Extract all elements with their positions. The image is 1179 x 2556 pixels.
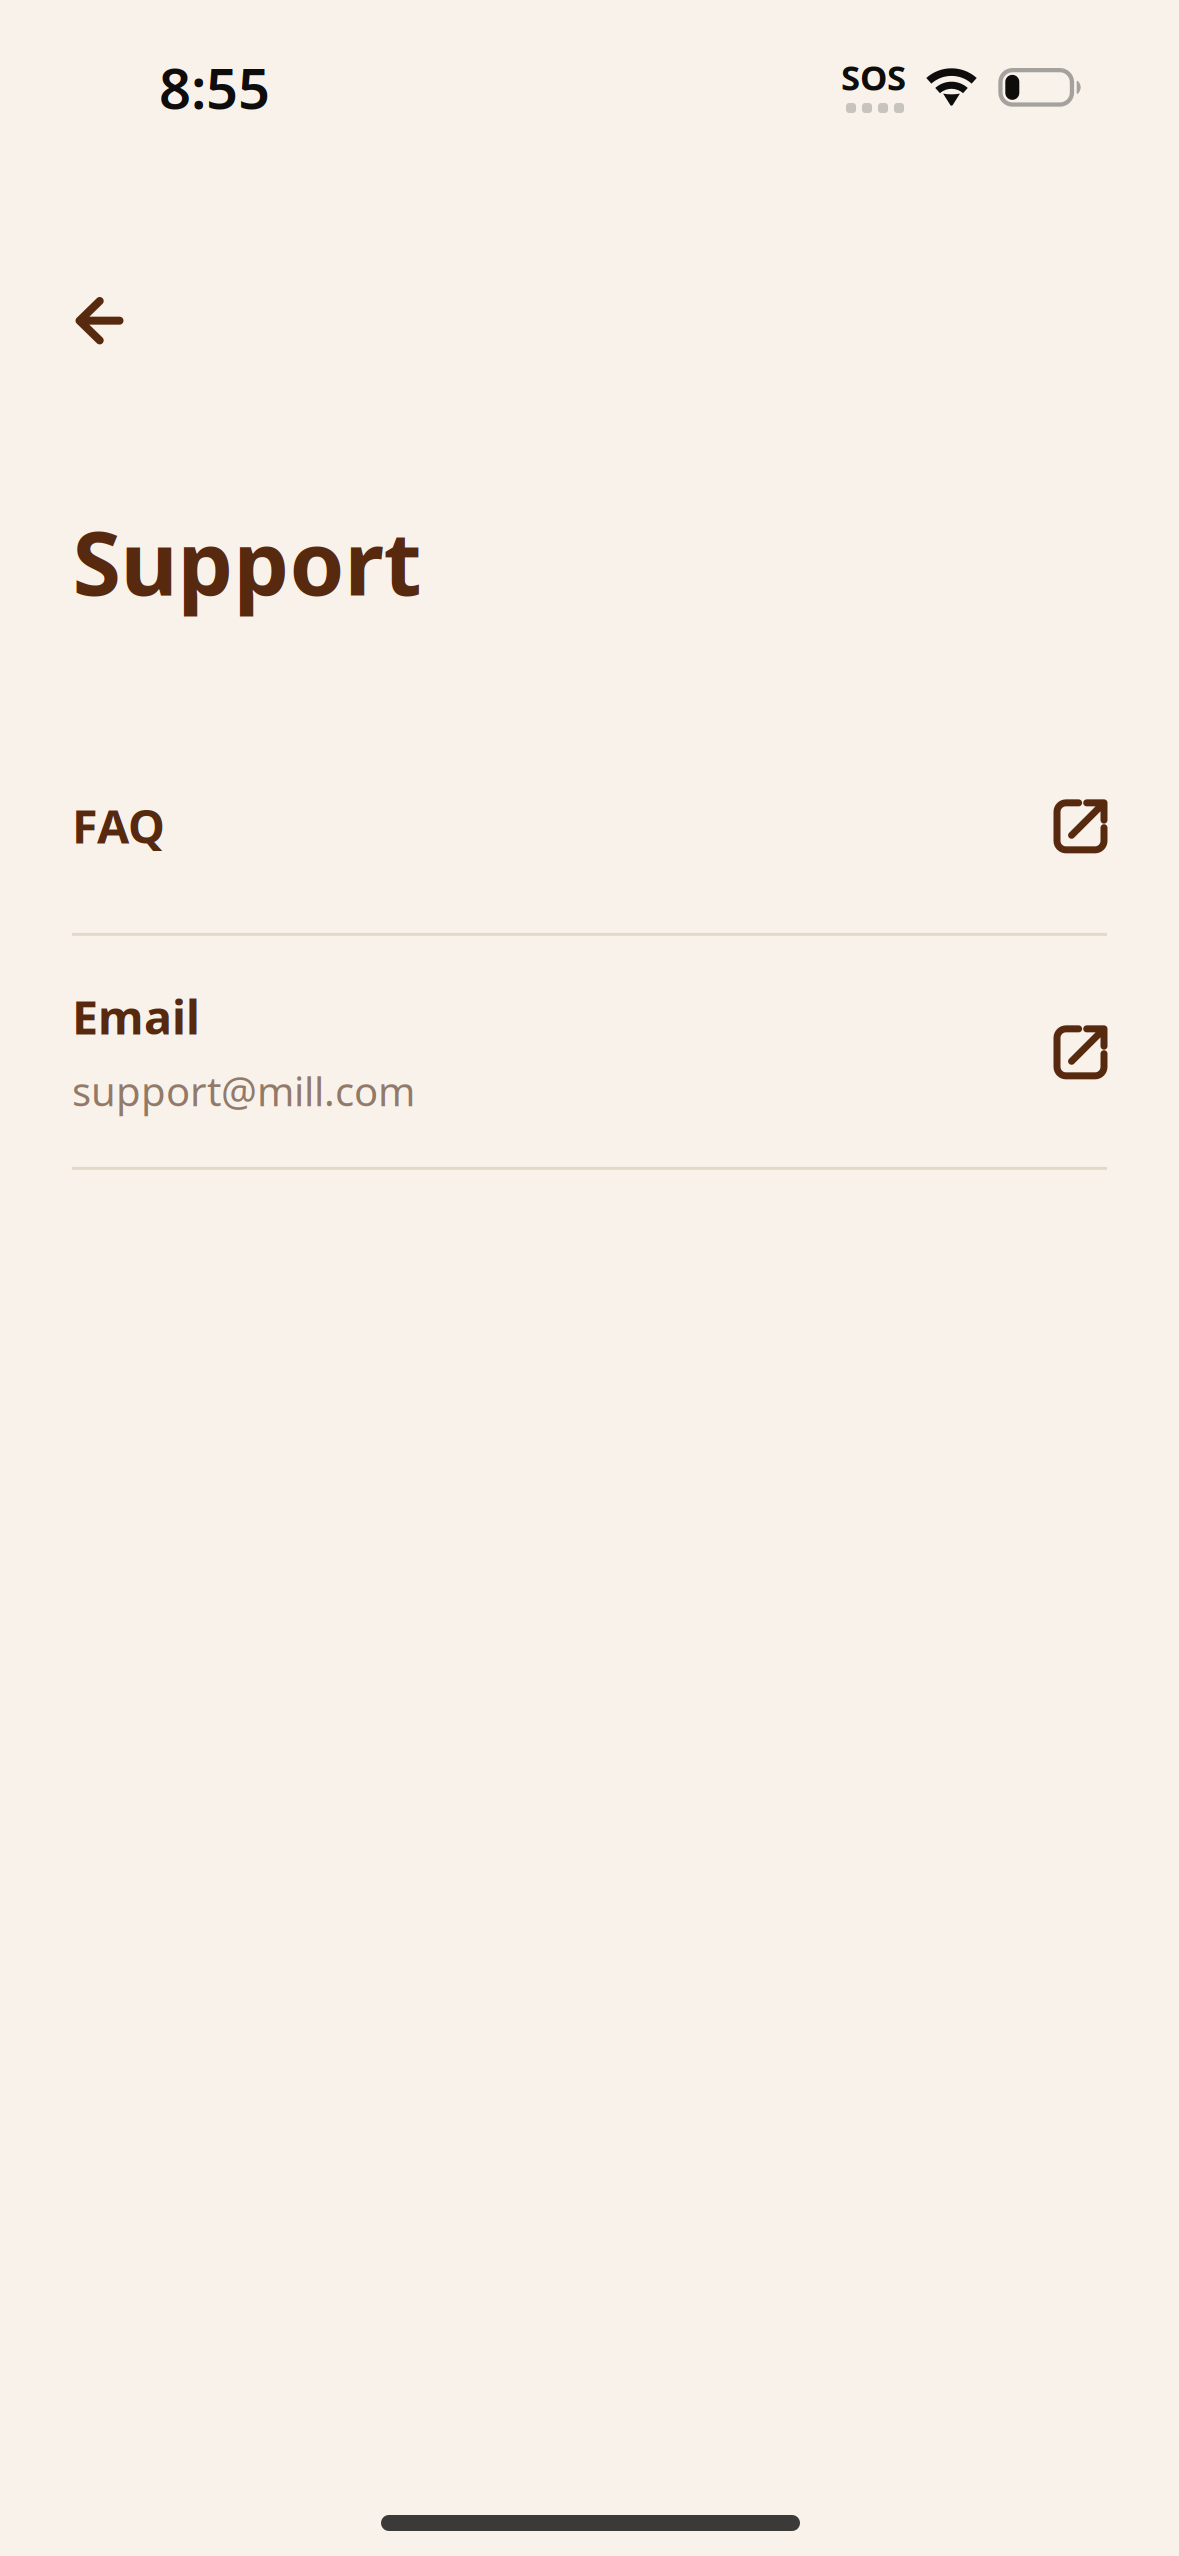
staticText: support@mill.com <box>72 1064 415 1117</box>
button[interactable]: FAQ <box>0 718 1179 933</box>
staticText: SOS <box>841 54 906 100</box>
staticText: Support <box>72 503 421 620</box>
staticText: 8:55 <box>159 50 270 124</box>
staticText: FAQ <box>72 794 165 856</box>
button[interactable]: Back <box>53 277 145 364</box>
staticText: Email <box>72 985 200 1047</box>
button[interactable]: Email <box>0 936 1179 1167</box>
